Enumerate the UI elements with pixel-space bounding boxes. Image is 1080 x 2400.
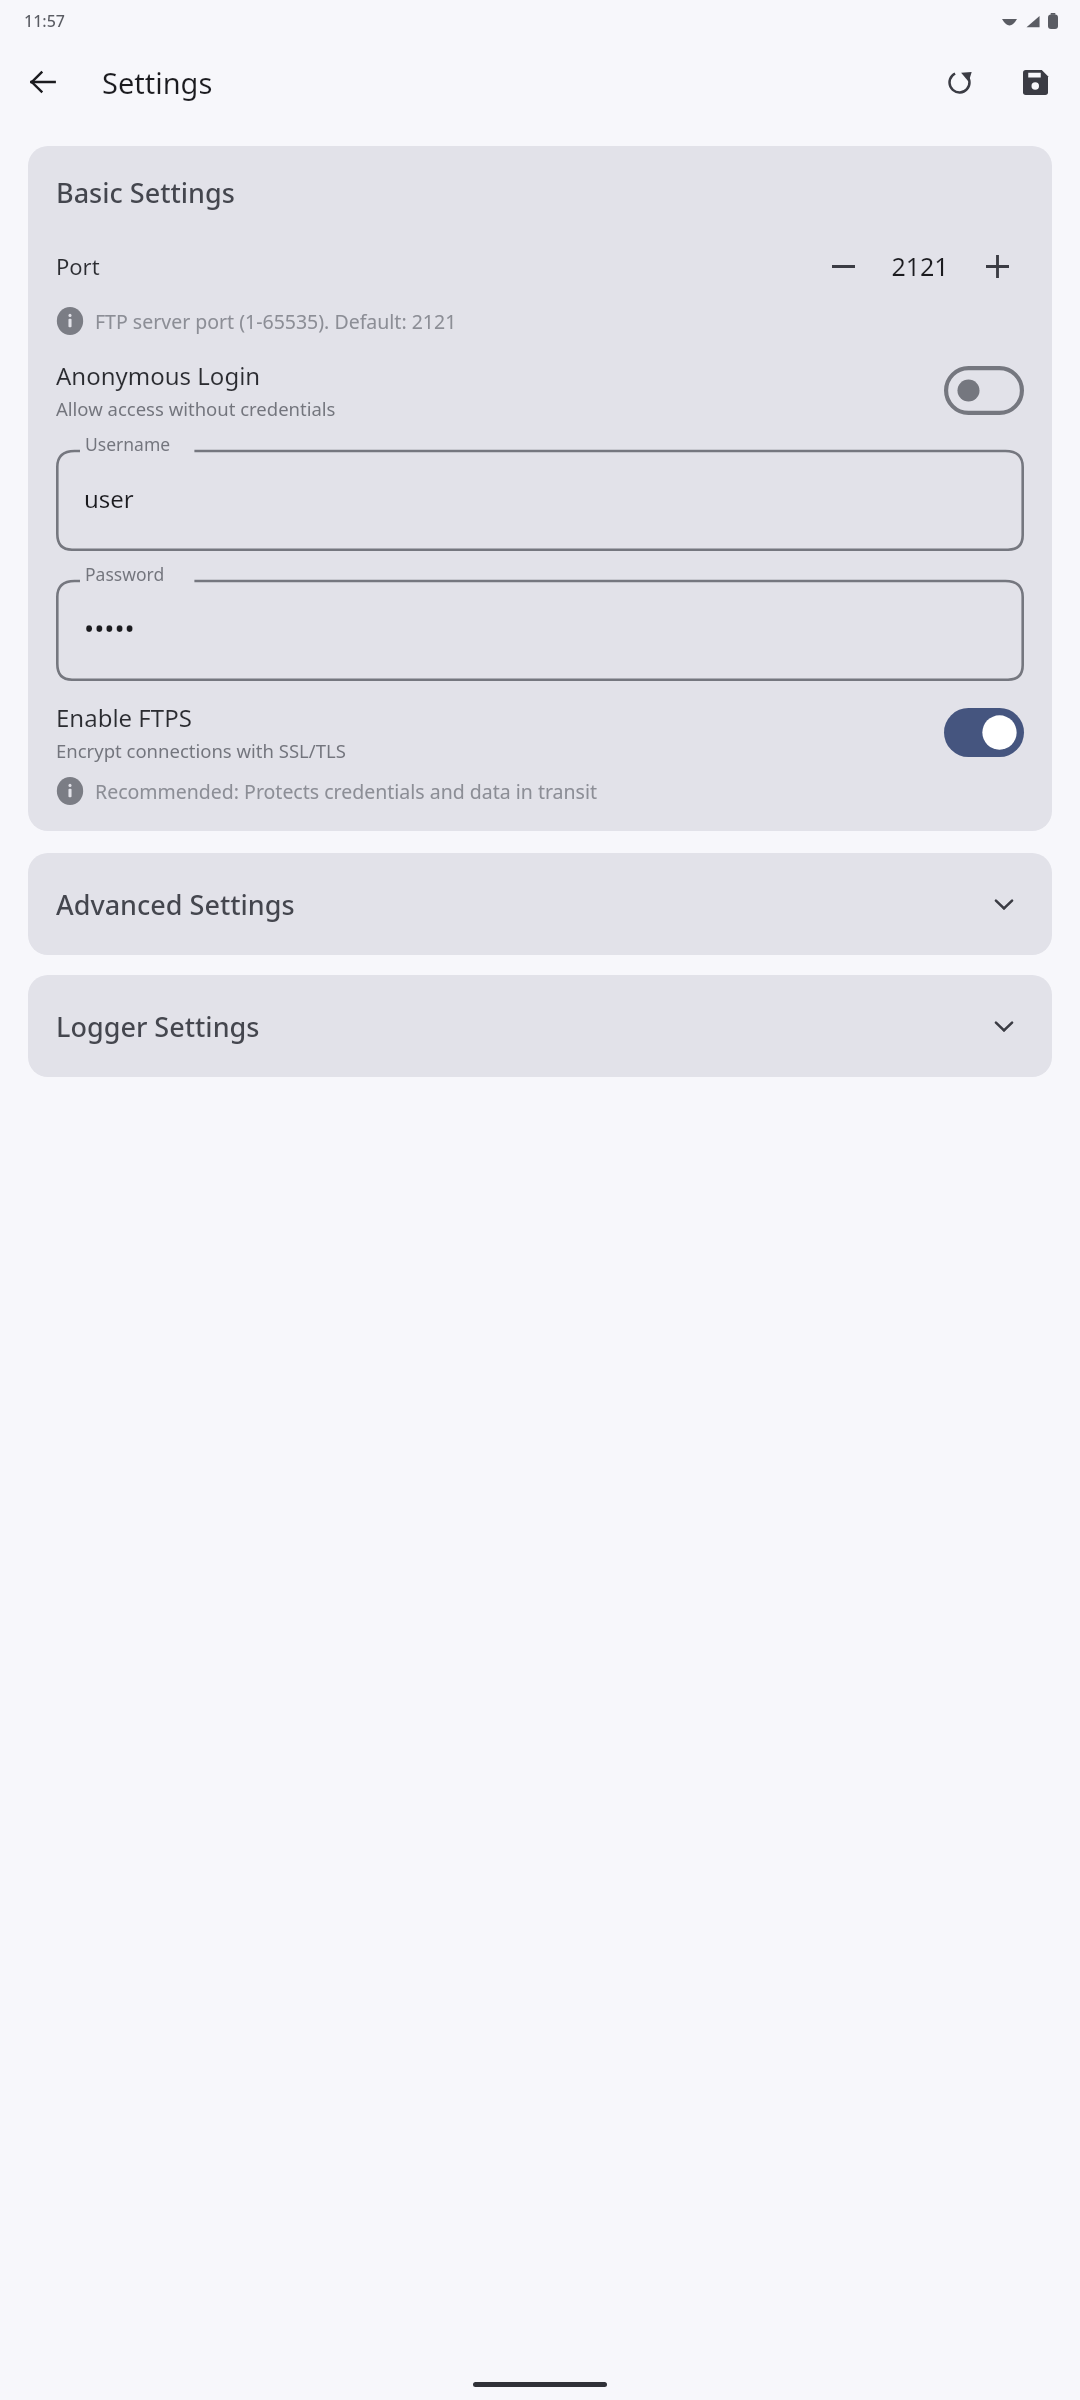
staticText: Password	[85, 562, 165, 586]
staticText: 11:57	[24, 10, 65, 32]
button[interactable]: Switch on	[944, 708, 1024, 757]
button[interactable]: Enable FTPS	[56, 701, 1024, 763]
button[interactable]: Logger Settings	[28, 975, 1052, 1077]
staticText: Port	[56, 251, 100, 281]
button[interactable]: Save	[1008, 55, 1062, 109]
button[interactable]: Increase port	[970, 239, 1024, 293]
other: Expand Logger Settings	[984, 1006, 1024, 1046]
button[interactable]: Advanced Settings	[28, 853, 1052, 955]
button[interactable]: Decrease port	[816, 239, 870, 293]
staticText: Advanced Settings	[56, 886, 295, 923]
staticText: Logger Settings	[56, 1008, 260, 1045]
staticText: Allow access without credentials	[56, 396, 336, 421]
button[interactable]: Anonymous Login	[56, 359, 1024, 421]
staticText: Anonymous Login	[56, 359, 261, 392]
button[interactable]: Back	[16, 55, 70, 109]
staticText: FTP server port (1-65535). Default: 2121	[95, 308, 457, 335]
staticText: Username	[85, 432, 171, 456]
staticText: user	[84, 482, 134, 515]
button[interactable]: Switch off	[944, 366, 1024, 415]
staticText: Settings	[102, 63, 213, 102]
staticText: Basic Settings	[56, 174, 235, 211]
staticText: 2121	[891, 249, 949, 283]
staticText: •••••	[84, 610, 135, 647]
staticText: Recommended: Protects credentials and da…	[95, 778, 597, 805]
button[interactable]: Password	[56, 571, 1024, 681]
staticText: Encrypt connections with SSL/TLS	[56, 738, 346, 763]
button[interactable]: Refresh	[932, 55, 986, 109]
button[interactable]: Username	[56, 441, 1024, 551]
other: Expand Advanced Settings	[984, 884, 1024, 924]
staticText: Enable FTPS	[56, 701, 192, 734]
